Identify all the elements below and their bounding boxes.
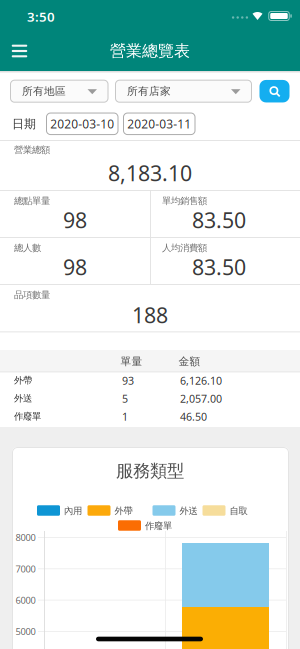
staticText: 外送	[179, 505, 197, 517]
staticText: 外送	[14, 393, 32, 404]
button[interactable]: Search	[259, 80, 289, 102]
staticText: 8,183.10	[108, 159, 192, 187]
staticText: 2,057.00	[180, 391, 222, 406]
staticText: 83.50	[192, 206, 246, 234]
staticText: 所有店家	[127, 85, 171, 98]
staticText: 總點單量	[14, 195, 50, 207]
staticText: 總人數	[14, 242, 41, 254]
staticText: 營業總額	[14, 144, 50, 156]
staticText: 品項數量	[14, 289, 50, 301]
staticText: 188	[132, 301, 168, 329]
button[interactable]: 所有店家	[115, 80, 252, 103]
staticText: 服務類型	[116, 460, 184, 482]
staticText: 46.50	[180, 409, 207, 424]
staticText: 作廢單	[14, 411, 41, 422]
staticText: 自取	[229, 505, 247, 517]
staticText: 外帶	[14, 375, 32, 386]
staticText: 日期	[12, 117, 36, 131]
staticText: 83.50	[192, 253, 246, 281]
staticText: 3:50	[27, 8, 55, 25]
staticText: 93	[122, 373, 134, 388]
button[interactable]: 2020-03-10	[46, 112, 118, 135]
staticText: 1	[122, 409, 128, 424]
staticText: 98	[63, 253, 87, 281]
staticText: 98	[63, 206, 87, 234]
staticText: 金額	[178, 355, 200, 368]
staticText: 5000	[15, 625, 35, 638]
button[interactable]: Menu	[4, 36, 34, 66]
staticText: 人均消費額	[162, 242, 207, 254]
button[interactable]: 2020-03-11	[123, 112, 195, 135]
staticText: 5	[122, 391, 128, 406]
button[interactable]: 所有地區	[10, 80, 108, 103]
staticText: 8000	[15, 531, 35, 544]
staticText: 作廢單	[145, 520, 172, 532]
staticText: 7000	[15, 563, 35, 575]
staticText: 6,126.10	[180, 373, 222, 388]
staticText: 內用	[64, 505, 82, 517]
staticText: 2020-03-10	[50, 116, 114, 132]
staticText: 單均銷售額	[162, 195, 207, 207]
staticText: 6000	[15, 594, 35, 606]
staticText: 營業總覽表	[110, 41, 190, 61]
staticText: 單量	[120, 355, 142, 368]
staticText: 2020-03-11	[127, 116, 191, 132]
staticText: 外帶	[114, 505, 132, 517]
staticText: 所有地區	[22, 85, 66, 98]
